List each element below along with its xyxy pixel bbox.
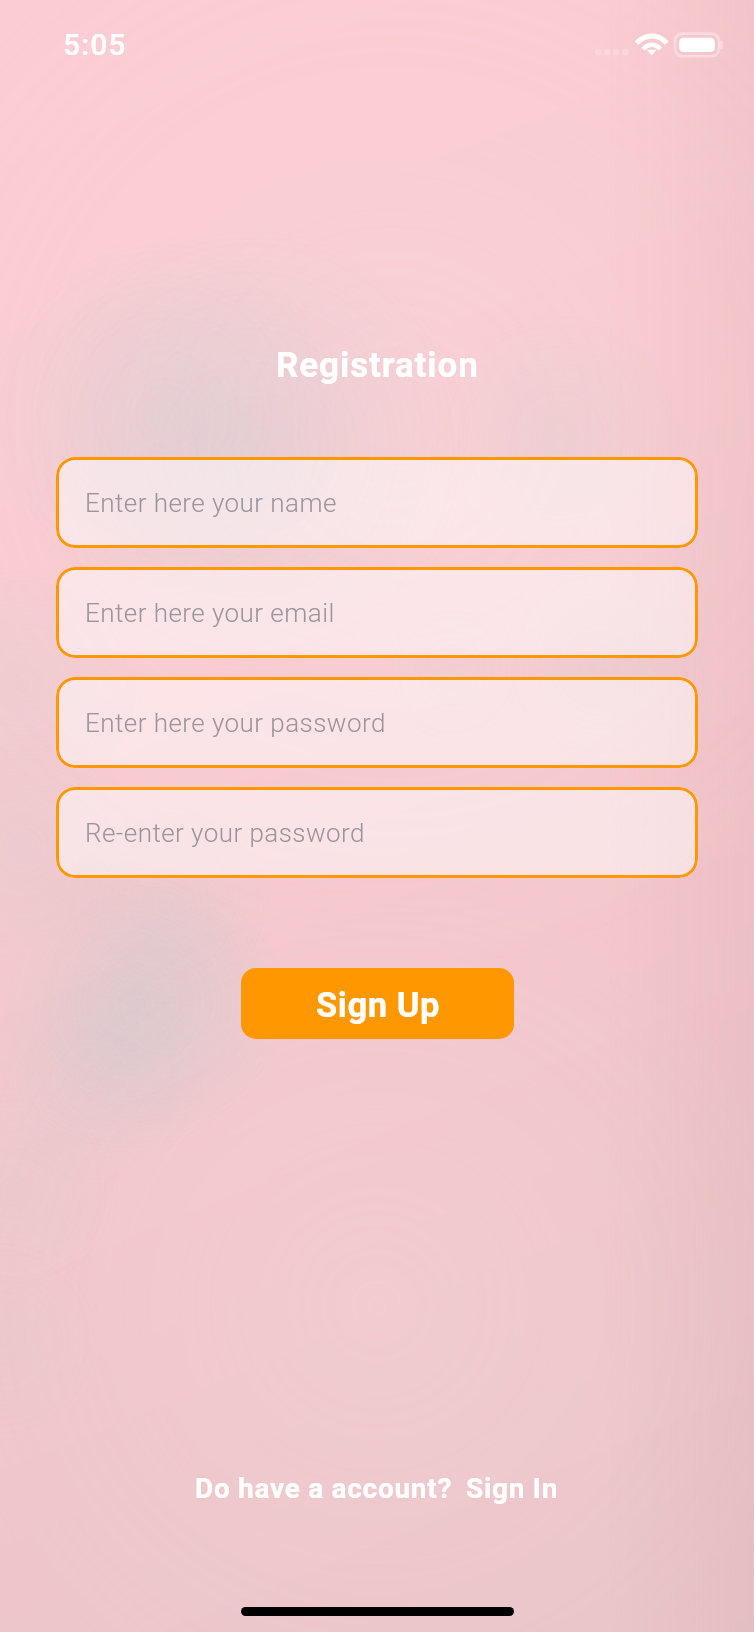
other: Signal, Wi-Fi and battery status [0, 0, 754, 90]
staticText: Enter here your password [85, 708, 386, 738]
button[interactable]: Sign In [466, 1472, 559, 1505]
staticText: Do have a account? [195, 1472, 453, 1505]
button[interactable]: Enter here your name [56, 457, 698, 548]
staticText: Enter here your email [85, 598, 335, 628]
button[interactable]: Sign Up [241, 968, 514, 1039]
staticText: Sign Up [316, 985, 440, 1026]
staticText: Enter here your name [85, 488, 337, 518]
staticText: Registration [276, 345, 479, 386]
staticText: Re-enter your password [85, 818, 365, 848]
button[interactable]: Enter here your password [56, 677, 698, 768]
staticText: 5:05 [63, 27, 127, 62]
button[interactable]: Enter here your email [56, 567, 698, 658]
staticText: Sign In [466, 1472, 559, 1505]
button[interactable]: Re-enter your password [56, 787, 698, 878]
